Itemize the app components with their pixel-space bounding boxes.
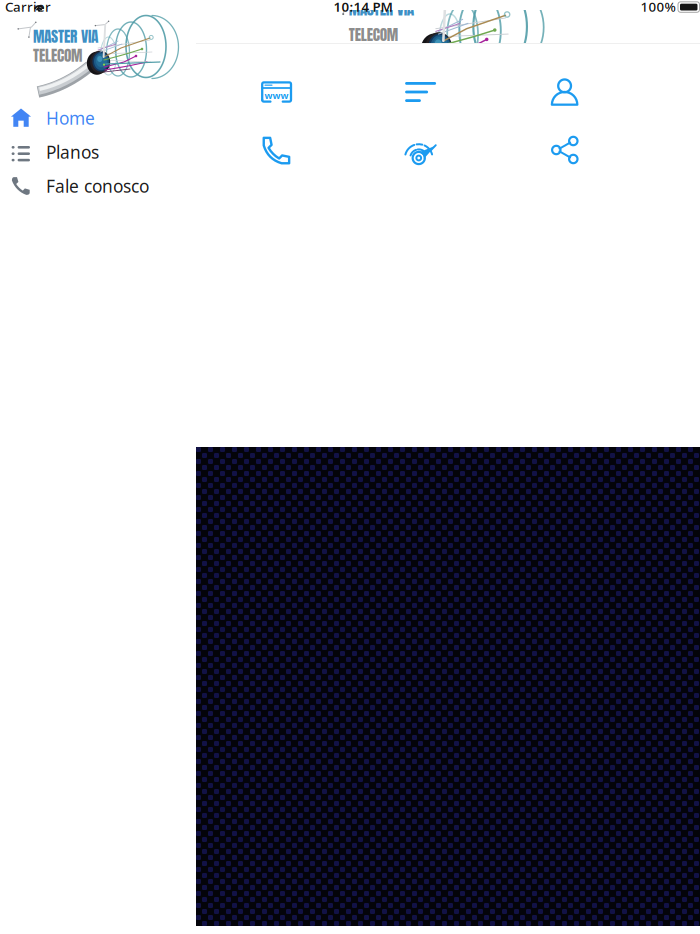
button[interactable]: Compartilhar <box>493 121 637 179</box>
staticText: 10:14 PM <box>333 0 392 15</box>
staticText: Planos <box>46 140 99 163</box>
staticText: MASTER VIA <box>33 25 98 48</box>
button[interactable]: Fale conosco <box>0 169 196 203</box>
button[interactable]: Telefone <box>205 121 349 179</box>
staticText: MASTER VIA <box>349 0 414 20</box>
staticText: Carrier <box>5 0 51 15</box>
staticText: TELECOM <box>33 44 82 67</box>
staticText: Fale conosco <box>46 174 149 197</box>
button[interactable]: Planos <box>0 135 196 169</box>
staticText: www <box>265 89 289 101</box>
staticText: Home <box>46 106 95 129</box>
staticText: 100% <box>640 0 675 15</box>
staticText: TELECOM <box>349 23 398 46</box>
button[interactable]: Planos <box>349 63 493 121</box>
button[interactable]: Site <box>205 63 349 121</box>
button[interactable]: Home <box>0 101 196 135</box>
button[interactable]: Teste de velocidade <box>349 121 493 179</box>
button[interactable]: Área do cliente <box>493 63 637 121</box>
